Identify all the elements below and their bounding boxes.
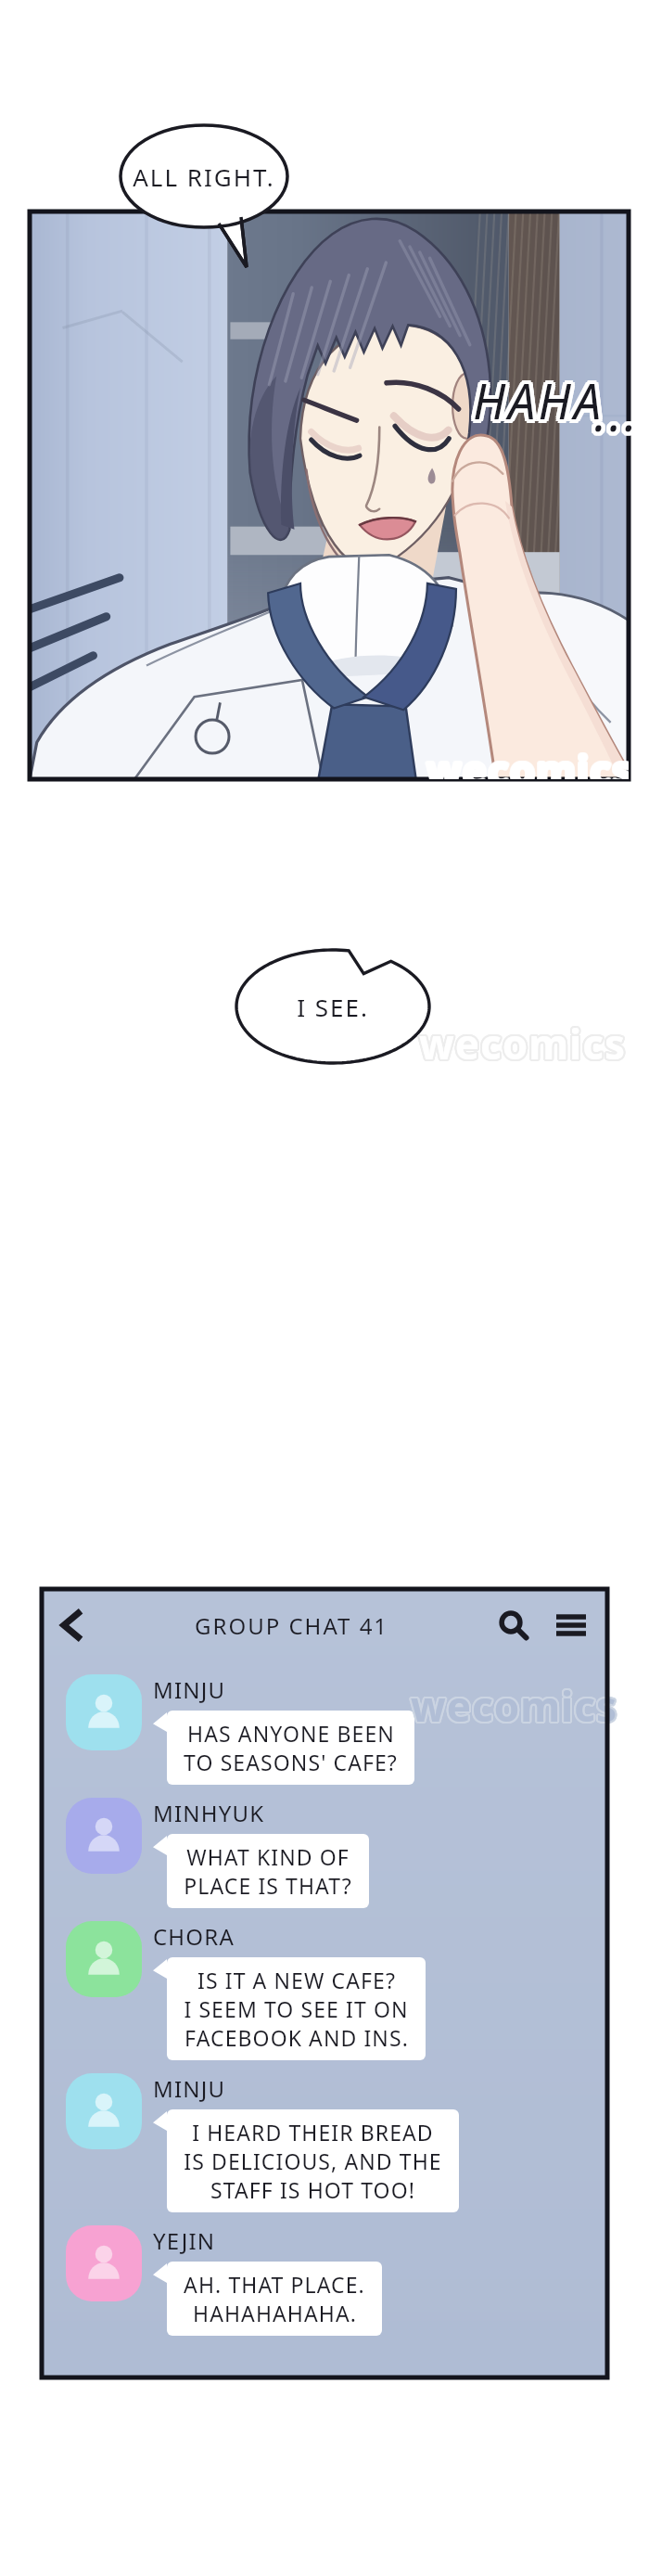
staticText: HAHA	[471, 369, 603, 435]
staticText: CHORA	[153, 1921, 235, 1952]
staticText: wecomics	[410, 1679, 617, 1735]
staticText: HAHA	[475, 367, 606, 433]
staticText: wecomics	[420, 1015, 627, 1070]
staticText: wecomics	[427, 742, 629, 779]
staticText: AH. THAT PLACE.	[184, 2270, 365, 2299]
staticText: HAHA	[469, 369, 601, 435]
staticText: ...	[592, 381, 638, 447]
staticText: HAHA	[473, 364, 604, 429]
staticText: wecomics	[427, 743, 629, 779]
staticText: ...	[596, 379, 642, 445]
staticText: wecomics	[428, 742, 629, 779]
staticText: wecomics	[411, 1679, 617, 1735]
staticText: HAHAHAHAHA.	[193, 2299, 357, 2327]
button[interactable]: CHORA	[66, 1921, 607, 2060]
staticText: PLACE IS THAT?	[184, 1871, 352, 1900]
button[interactable]: MINHYUK	[66, 1798, 607, 1908]
staticText: ...	[592, 383, 638, 449]
staticText: wecomics	[425, 741, 629, 779]
staticText: wecomics	[410, 1680, 617, 1736]
staticText: MINJU	[153, 2073, 226, 2104]
staticText: wecomics	[417, 1017, 624, 1072]
button[interactable]: YEJIN	[66, 2225, 607, 2336]
staticText: wecomics	[419, 1017, 626, 1072]
staticText: ...	[594, 378, 640, 443]
staticText: GROUP CHAT 41	[195, 1610, 389, 1641]
button[interactable]: MINJU	[66, 1674, 607, 1785]
staticText: ...	[591, 379, 636, 445]
staticText: wecomics	[419, 1018, 626, 1073]
staticText: ...	[594, 376, 640, 442]
staticText: ...	[592, 379, 638, 445]
staticText: wecomics	[425, 743, 629, 779]
staticText: wecomics	[418, 1018, 625, 1073]
staticText: HAHA	[469, 367, 601, 433]
staticText: wecomics	[425, 742, 629, 779]
staticText: wecomics	[427, 740, 629, 779]
staticText: ...	[598, 379, 643, 445]
staticText: STAFF IS HOT TOO!	[210, 2175, 415, 2204]
staticText: wecomics	[426, 740, 629, 779]
staticText: HAHA	[471, 365, 603, 431]
button[interactable]: GROUP CHAT 41	[99, 1589, 485, 1661]
staticText: HAHA	[477, 365, 608, 431]
staticText: HAHA	[473, 371, 604, 437]
staticText: wecomics	[417, 1016, 624, 1071]
staticText: wecomics	[426, 743, 629, 779]
staticText: wecomics	[426, 742, 629, 779]
staticText: HAHA	[471, 371, 603, 437]
staticText: I SEEM TO SEE IT ON	[184, 1994, 409, 2023]
staticText: I HEARD THEIR BREAD	[192, 2118, 434, 2147]
staticText: wecomics	[426, 743, 629, 779]
staticText: IS IT A NEW CAFE?	[197, 1966, 396, 1994]
staticText: HAHA	[477, 367, 608, 433]
staticText: wecomics	[427, 741, 629, 779]
staticText: I SEE.	[297, 991, 369, 1023]
staticText: HAHA	[475, 364, 606, 429]
staticText: wecomics	[419, 1016, 626, 1071]
staticText: ...	[591, 378, 636, 443]
staticText: HAHA	[471, 364, 603, 429]
staticText: HAS ANYONE BEEN	[187, 1719, 395, 1748]
staticText: wecomics	[421, 1016, 628, 1071]
staticText: wecomics	[420, 1018, 627, 1073]
staticText: wecomics	[413, 1678, 619, 1734]
staticText: wecomics	[419, 1015, 626, 1070]
staticText: wecomics	[418, 1014, 625, 1070]
staticText: MINJU	[153, 1674, 226, 1705]
staticText: wecomics	[413, 1679, 619, 1735]
staticText: ...	[594, 379, 640, 445]
button[interactable]: Menu	[542, 1596, 600, 1654]
staticText: MINHYUK	[153, 1798, 265, 1828]
staticText: wecomics	[418, 1015, 625, 1070]
staticText: wecomics	[411, 1676, 617, 1732]
button[interactable]: MINJU	[66, 2073, 607, 2212]
staticText: HAHA	[475, 369, 606, 435]
staticText: wecomics	[409, 1678, 616, 1734]
staticText: ...	[596, 378, 642, 443]
staticText: wecomics	[413, 1677, 619, 1733]
staticText: wecomics	[426, 742, 629, 779]
staticText: wecomics	[426, 744, 629, 779]
staticText: wecomics	[428, 741, 629, 779]
staticText: wecomics	[426, 741, 629, 779]
staticText: ...	[598, 378, 643, 443]
staticText: wecomics	[421, 1015, 628, 1070]
staticText: HAHA	[473, 369, 604, 435]
staticText: WHAT KIND OF	[186, 1842, 350, 1871]
staticText: wecomics	[421, 1017, 628, 1072]
staticText: wecomics	[428, 743, 629, 779]
button[interactable]: Search	[485, 1596, 542, 1654]
staticText: wecomics	[426, 741, 629, 779]
staticText: FACEBOOK AND INS.	[185, 2023, 409, 2052]
staticText: wecomics	[412, 1680, 618, 1736]
staticText: wecomics	[417, 1015, 624, 1070]
staticText: ...	[592, 376, 638, 442]
staticText: wecomics	[418, 1016, 625, 1071]
staticText: wecomics	[409, 1679, 616, 1735]
staticText: ...	[596, 383, 642, 449]
button[interactable]: Back	[42, 1596, 99, 1654]
staticText: ...	[598, 381, 643, 447]
staticText: wecomics	[412, 1676, 618, 1732]
staticText: ALL RIGHT.	[133, 160, 275, 193]
